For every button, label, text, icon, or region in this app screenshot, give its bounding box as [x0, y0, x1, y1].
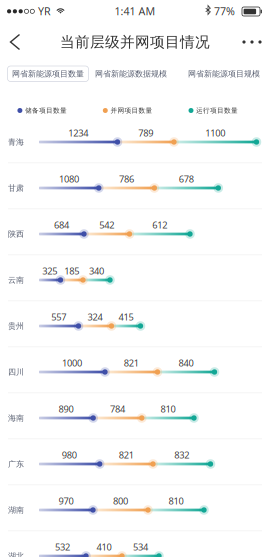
staticText: 1080 [59, 173, 79, 185]
staticText: 810 [168, 495, 183, 507]
staticText: 并网项目数量 [110, 106, 152, 115]
staticText: 534 [133, 541, 148, 553]
staticText: 340 [89, 265, 104, 277]
staticText: 832 [174, 449, 189, 461]
staticText: 890 [59, 403, 74, 415]
staticText: 1100 [205, 127, 225, 139]
staticText: 324 [87, 311, 102, 323]
staticText: 840 [178, 357, 193, 369]
staticText: 网省新能源数据规模 [95, 69, 167, 79]
staticText: 贵州 [8, 321, 24, 331]
button[interactable]: 网省新能源数据规模 [94, 66, 168, 81]
staticText: 684 [54, 219, 69, 231]
staticText: 410 [96, 541, 111, 553]
staticText: 甘肃 [8, 183, 24, 193]
staticText: 云南 [8, 275, 24, 285]
button[interactable]: 网省新能源项目规模 [186, 66, 262, 81]
staticText: YR [38, 4, 51, 18]
staticText: 784 [110, 403, 125, 415]
button[interactable]: More [236, 28, 268, 56]
staticText: 网省新能源项目数量 [12, 69, 84, 79]
staticText: 1000 [62, 357, 82, 369]
staticText: 789 [138, 127, 153, 139]
staticText: 湖南 [8, 505, 24, 515]
button[interactable]: Back [2, 28, 28, 56]
staticText: 970 [58, 495, 73, 507]
staticText: 821 [124, 357, 139, 369]
staticText: 1:41 AM [114, 4, 155, 18]
staticText: 四川 [8, 367, 24, 377]
staticText: 当前层级并网项目情况 [60, 33, 210, 51]
staticText: 运行项目数量 [196, 106, 238, 115]
staticText: 青海 [8, 137, 24, 147]
staticText: 1234 [68, 127, 88, 139]
staticText: 678 [179, 173, 194, 185]
staticText: 800 [113, 495, 128, 507]
staticText: 557 [51, 311, 66, 323]
button[interactable]: 网省新能源项目数量 [7, 66, 88, 81]
staticText: 980 [62, 449, 77, 461]
staticText: 湖北 [8, 551, 24, 557]
staticText: 415 [118, 311, 133, 323]
staticText: 185 [64, 265, 79, 277]
staticText: 77% [214, 4, 235, 18]
staticText: 542 [99, 219, 114, 231]
staticText: 海南 [8, 413, 24, 423]
staticText: 325 [42, 265, 57, 277]
staticText: 810 [160, 403, 175, 415]
staticText: 储备项目数量 [25, 106, 67, 115]
staticText: 陕西 [8, 229, 24, 239]
staticText: 广东 [8, 459, 24, 469]
staticText: 532 [55, 541, 70, 553]
staticText: 821 [119, 449, 134, 461]
staticText: 786 [119, 173, 134, 185]
staticText: 网省新能源项目规模 [188, 69, 260, 79]
staticText: 612 [152, 219, 167, 231]
